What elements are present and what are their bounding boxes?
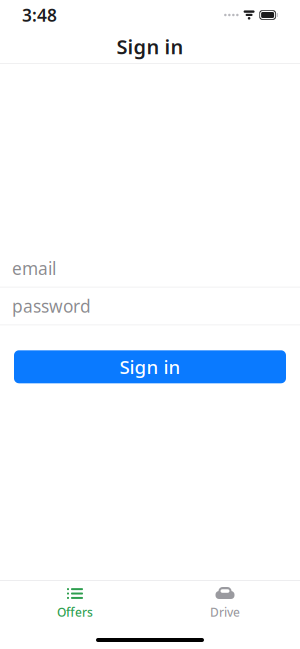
staticText: Sign in [116, 33, 183, 60]
staticText: password [12, 294, 91, 317]
staticText: Sign in [119, 354, 180, 379]
staticText: 3:48 [22, 3, 57, 26]
button[interactable]: Sign in [14, 350, 286, 383]
staticText: email [12, 257, 56, 280]
staticText: Drive [210, 604, 240, 620]
button[interactable]: Drive [150, 581, 300, 625]
staticText: Offers [57, 604, 93, 620]
button[interactable]: Offers [0, 581, 150, 625]
